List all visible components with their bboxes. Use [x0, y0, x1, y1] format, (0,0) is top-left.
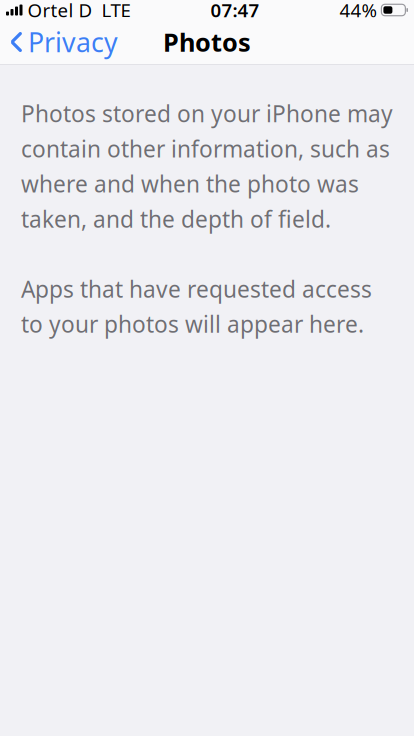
staticText: 44% [339, 0, 377, 22]
staticText: Ortel D [27, 0, 92, 22]
staticText: Privacy [28, 24, 118, 60]
staticText: Photos [163, 25, 251, 59]
staticText: Apps that have requested access to your … [21, 274, 372, 339]
staticText: Photos stored on your iPhone may contain… [21, 98, 393, 234]
button[interactable]: Privacy [0, 18, 126, 66]
staticText: LTE [101, 0, 130, 22]
staticText: 07:47 [210, 0, 259, 22]
